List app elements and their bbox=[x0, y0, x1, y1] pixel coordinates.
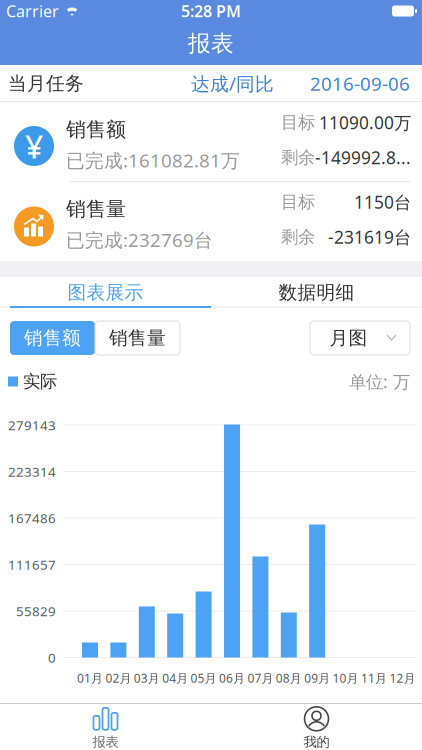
staticText: 剩余 bbox=[281, 147, 315, 168]
staticText: 报表 bbox=[188, 30, 234, 57]
staticText: 月图 bbox=[329, 326, 367, 349]
button[interactable]: 达成/同比 bbox=[191, 71, 274, 96]
staticText: 销售量 bbox=[66, 197, 126, 221]
button[interactable]: 销售额 bbox=[10, 321, 95, 355]
staticText: 已完成:161082.81万 bbox=[66, 148, 240, 173]
staticText: 单位: 万 bbox=[349, 370, 410, 393]
staticText: 01月 bbox=[77, 670, 103, 686]
staticText: 07月 bbox=[247, 670, 273, 686]
staticText: 111657 bbox=[8, 556, 56, 573]
staticText: 1150台 bbox=[354, 190, 411, 213]
staticText: 2016-09-06 bbox=[310, 71, 410, 96]
staticText: 0 bbox=[48, 649, 56, 666]
staticText: 12月 bbox=[389, 670, 415, 686]
staticText: -149992.8... bbox=[315, 146, 411, 169]
staticText: Carrier bbox=[6, 0, 59, 22]
staticText: 目标 bbox=[281, 191, 315, 213]
staticText: 55829 bbox=[16, 602, 56, 620]
button[interactable]: 图表展示 bbox=[0, 277, 211, 308]
staticText: 销售额 bbox=[24, 326, 81, 349]
staticText: 10月 bbox=[333, 670, 359, 686]
button[interactable]: 报表 bbox=[0, 706, 211, 750]
staticText: ¥ bbox=[25, 125, 43, 167]
staticText: 图表展示 bbox=[67, 281, 143, 304]
staticText: 08月 bbox=[276, 670, 302, 686]
button[interactable]: 销售量 bbox=[0, 182, 422, 261]
staticText: 数据明细 bbox=[278, 281, 354, 304]
staticText: 销售额 bbox=[66, 117, 126, 142]
staticText: 223314 bbox=[8, 463, 56, 480]
staticText: 167486 bbox=[8, 509, 56, 527]
staticText: 当月任务 bbox=[8, 72, 84, 95]
staticText: 我的 bbox=[303, 734, 329, 750]
staticText: 11月 bbox=[361, 670, 387, 686]
button[interactable]: 我的 bbox=[211, 706, 422, 750]
staticText: 剩余 bbox=[281, 226, 315, 248]
staticText: 02月 bbox=[105, 670, 131, 686]
staticText: 04月 bbox=[162, 670, 188, 686]
button[interactable]: 2016-09-06 bbox=[310, 71, 410, 96]
button[interactable]: 数据明细 bbox=[211, 277, 422, 308]
staticText: 09月 bbox=[304, 670, 330, 686]
staticText: -231619台 bbox=[328, 225, 411, 248]
staticText: 279143 bbox=[8, 416, 56, 434]
button[interactable]: 月图 bbox=[310, 321, 410, 355]
button[interactable]: ¥ bbox=[0, 102, 422, 182]
staticText: 11090.00万 bbox=[319, 111, 411, 134]
staticText: 5:28 PM bbox=[181, 0, 241, 22]
button[interactable]: 销售量 bbox=[95, 321, 180, 355]
staticText: 06月 bbox=[219, 670, 245, 686]
staticText: 销售量 bbox=[109, 326, 166, 349]
staticText: 03月 bbox=[134, 670, 160, 686]
staticText: 报表 bbox=[92, 734, 118, 750]
staticText: 已完成:232769台 bbox=[66, 227, 213, 252]
staticText: 达成/同比 bbox=[191, 71, 274, 96]
staticText: 实际 bbox=[23, 371, 57, 392]
staticText: 目标 bbox=[281, 112, 315, 133]
staticText: 05月 bbox=[191, 670, 217, 686]
